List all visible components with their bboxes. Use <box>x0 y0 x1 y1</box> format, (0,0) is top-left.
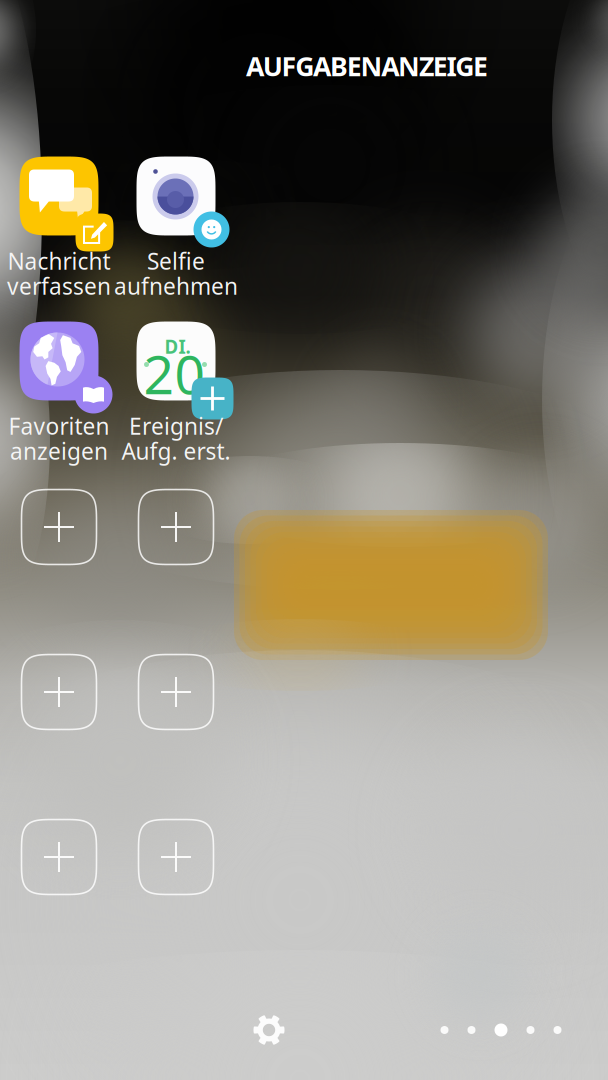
button[interactable]: Add shortcut <box>19 817 98 896</box>
staticText: Favoriten <box>8 411 109 441</box>
button[interactable]: Add shortcut <box>19 652 98 731</box>
staticText: Nachricht <box>7 246 110 276</box>
button[interactable]: Add shortcut <box>136 487 215 566</box>
button[interactable]: Selfie <box>118 156 234 306</box>
button[interactable]: Favoriten <box>1 321 117 471</box>
staticText: AUFGABENANZEIGE <box>246 48 488 84</box>
staticText: verfassen <box>7 271 111 301</box>
button[interactable]: Add shortcut <box>136 652 215 731</box>
staticText: Ereignis/ <box>129 411 223 441</box>
staticText: Aufg. erst. <box>121 436 230 466</box>
staticText: 20 <box>143 338 205 409</box>
button[interactable]: Nachricht <box>1 156 117 306</box>
staticText: anzeigen <box>10 436 108 466</box>
button[interactable]: DI. <box>118 321 234 471</box>
staticText: Selfie <box>147 246 205 276</box>
button[interactable]: Settings <box>240 1001 297 1058</box>
staticText: DI. <box>164 334 190 359</box>
staticText: aufnehmen <box>114 271 238 301</box>
button[interactable]: Add shortcut <box>19 487 98 566</box>
button[interactable]: Add shortcut <box>136 817 215 896</box>
